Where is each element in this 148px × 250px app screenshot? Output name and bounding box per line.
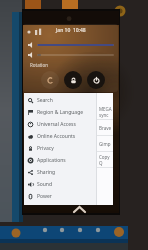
button[interactable]: Applications <box>24 154 96 166</box>
staticText: Privacy <box>37 145 54 152</box>
button[interactable]: MEGAsync <box>97 104 113 119</box>
staticText: Universal Access <box>37 121 76 128</box>
button[interactable]: Lock screen <box>64 71 82 89</box>
button[interactable]: Rotation lock <box>41 71 59 89</box>
button[interactable]: CopyQ <box>97 152 113 167</box>
button[interactable]: Brave <box>97 120 113 135</box>
staticText: Applications <box>37 157 66 164</box>
button[interactable]: Gimp <box>97 136 113 151</box>
button[interactable]: Search <box>24 94 96 106</box>
button[interactable]: Universal Access <box>24 118 96 130</box>
staticText: Online Accounts <box>37 133 76 140</box>
button[interactable]: Privacy <box>24 142 96 154</box>
staticText: CopyQ <box>99 154 113 166</box>
staticText: Search <box>37 97 53 104</box>
button[interactable]: Sound <box>24 178 96 190</box>
staticText: Region & Language <box>37 109 84 116</box>
button[interactable]: Region & Language <box>24 106 96 118</box>
staticText: Rotation <box>30 62 48 68</box>
staticText: MEGAsync <box>99 106 113 118</box>
staticText: Sharing <box>37 169 56 176</box>
button[interactable]: Sharing <box>24 166 96 178</box>
button[interactable]: Online Accounts <box>24 130 96 142</box>
staticText: Jan 10 10:48 <box>56 27 86 34</box>
staticText: Power <box>37 193 52 200</box>
button[interactable]: Power <box>24 190 96 202</box>
staticText: Sound <box>37 181 53 188</box>
staticText: Gimp <box>99 141 111 147</box>
staticText: Brave <box>99 125 112 131</box>
button[interactable]: Power <box>87 71 105 89</box>
